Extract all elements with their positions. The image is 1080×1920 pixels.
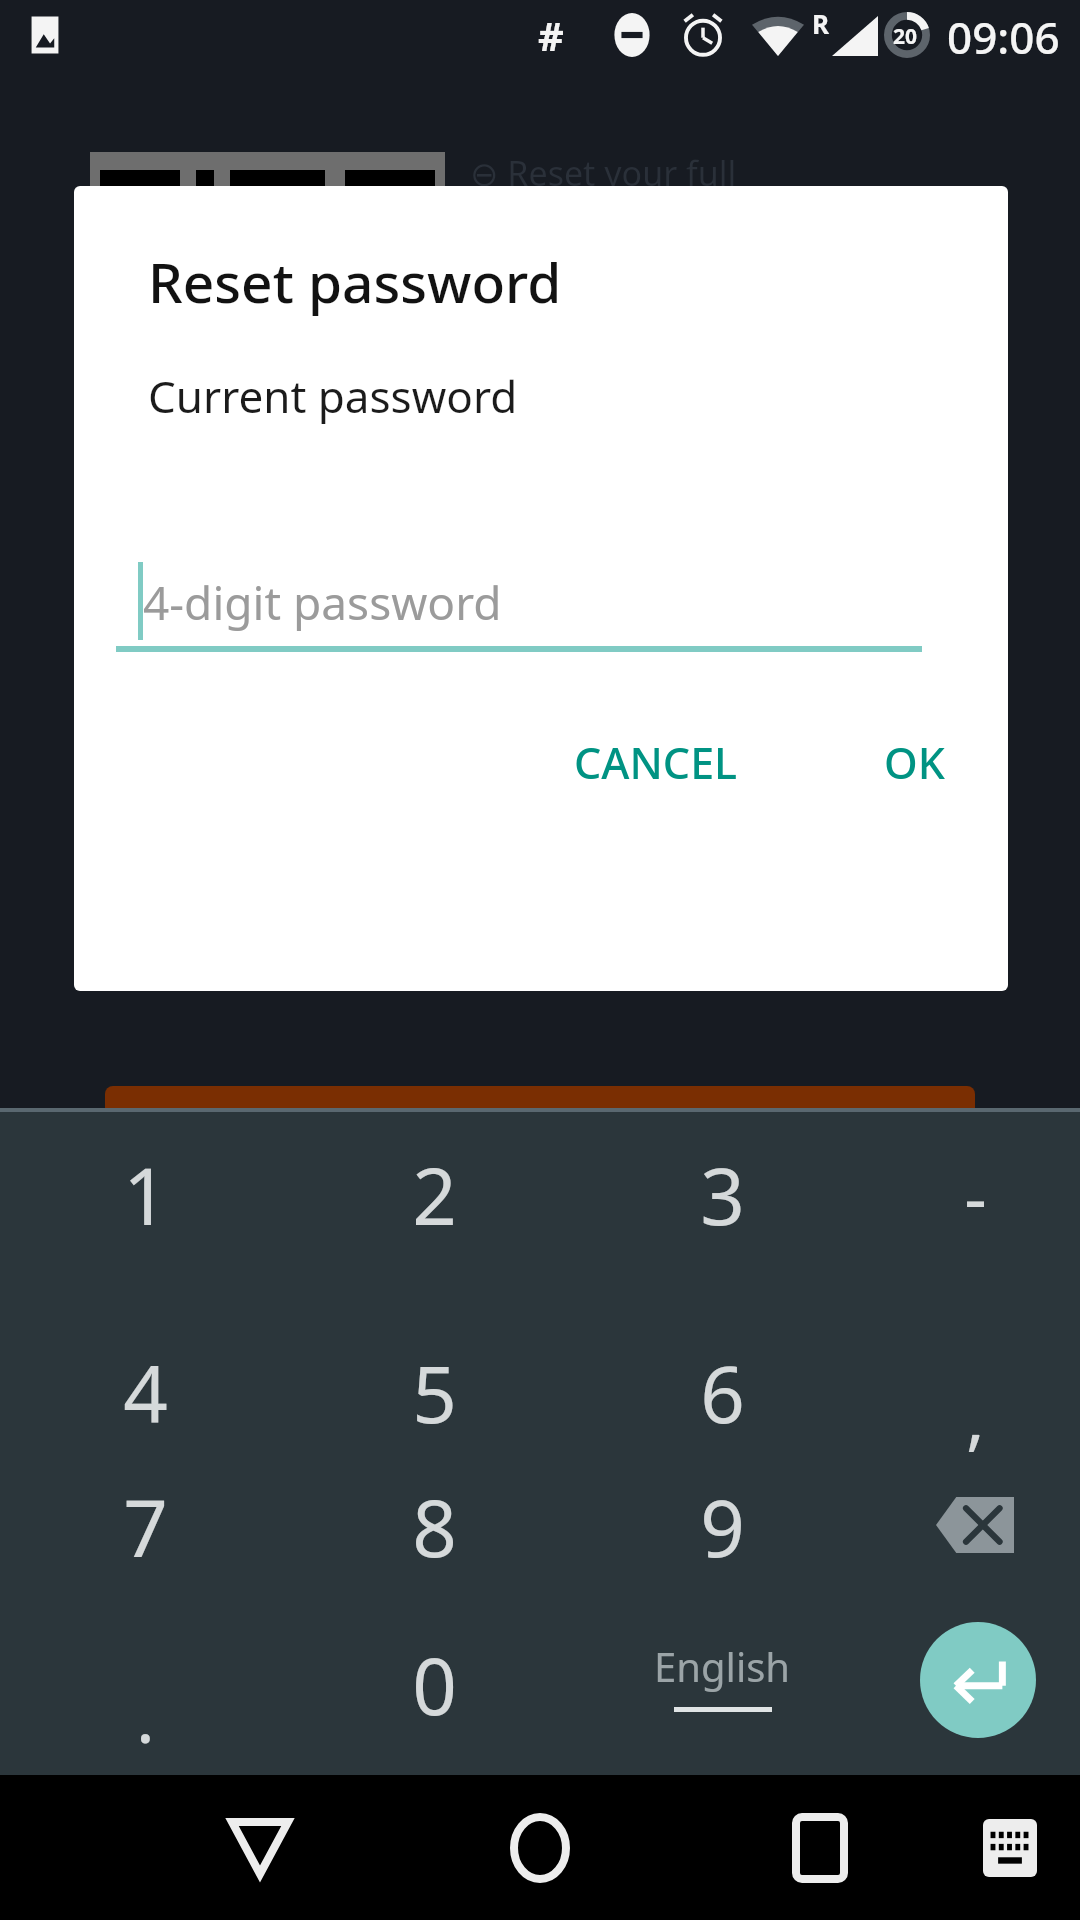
button[interactable]: Backspace: [855, 1450, 1080, 1600]
button[interactable]: 5: [314, 1318, 554, 1468]
button[interactable]: 0: [314, 1610, 554, 1760]
staticText: 0: [412, 1632, 457, 1738]
button[interactable]: CANCEL: [544, 714, 768, 810]
staticText: #: [538, 8, 564, 62]
staticText: 09:06: [947, 7, 1060, 67]
button[interactable]: Home: [460, 1775, 620, 1920]
button[interactable]: Recents: [740, 1775, 900, 1920]
staticText: 1: [123, 1142, 168, 1248]
button[interactable]: 6: [602, 1318, 842, 1468]
staticText: CANCEL: [574, 733, 738, 792]
button[interactable]: Back: [180, 1775, 340, 1920]
staticText: 4-digit password: [143, 571, 502, 634]
button[interactable]: -: [855, 1120, 1080, 1270]
staticText: .: [136, 1668, 155, 1763]
staticText: R: [812, 6, 830, 41]
button[interactable]: 2: [314, 1120, 554, 1270]
staticText: ,: [966, 1368, 985, 1463]
staticText: 8: [412, 1474, 457, 1580]
staticText: Current password: [148, 366, 518, 426]
staticText: 6: [700, 1340, 745, 1446]
staticText: English: [654, 1639, 791, 1693]
staticText: -: [964, 1148, 987, 1243]
staticText: 20: [893, 22, 918, 51]
button[interactable]: 4: [25, 1318, 265, 1468]
button[interactable]: 7: [25, 1452, 265, 1602]
button[interactable]: 9: [602, 1452, 842, 1602]
button[interactable]: 1: [25, 1120, 265, 1270]
staticText: 3: [700, 1142, 745, 1248]
staticText: 4: [123, 1340, 168, 1446]
button[interactable]: 8: [314, 1452, 554, 1602]
staticText: 9: [700, 1474, 745, 1580]
staticText: 2: [412, 1142, 457, 1248]
button[interactable]: OK: [854, 714, 975, 810]
staticText: Reset password: [148, 244, 562, 319]
staticText: 5: [412, 1340, 457, 1446]
button[interactable]: Switch keyboard: [950, 1775, 1070, 1920]
button[interactable]: 3: [602, 1120, 842, 1270]
staticText: OK: [884, 733, 945, 792]
staticText: ⊖ Reset your full: [470, 150, 737, 196]
button[interactable]: .: [25, 1640, 265, 1790]
button[interactable]: Enter: [920, 1622, 1036, 1738]
staticText: 7: [123, 1474, 168, 1580]
button[interactable]: English: [602, 1610, 842, 1740]
button[interactable]: ,: [855, 1340, 1080, 1490]
